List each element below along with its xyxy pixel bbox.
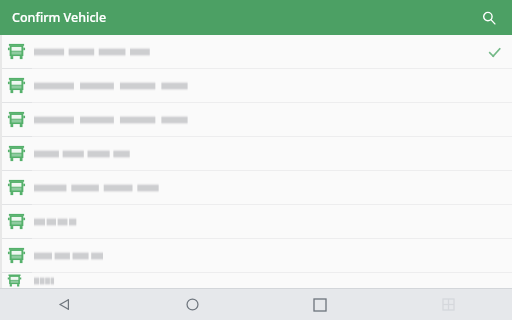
button[interactable]: Recent apps [256, 289, 384, 320]
button[interactable] [0, 35, 512, 68]
button[interactable]: Search [471, 0, 506, 35]
button[interactable] [0, 205, 512, 238]
button[interactable] [0, 137, 512, 170]
button[interactable] [0, 171, 512, 204]
button[interactable] [0, 239, 512, 272]
button[interactable] [0, 103, 512, 136]
button[interactable] [0, 273, 512, 288]
staticText: Confirm Vehicle [12, 9, 107, 26]
button[interactable]: Back [0, 289, 128, 320]
button[interactable] [0, 69, 512, 102]
button[interactable]: Home [128, 289, 256, 320]
